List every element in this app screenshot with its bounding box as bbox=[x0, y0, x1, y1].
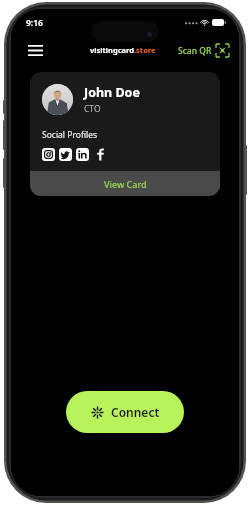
staticText: Social Profiles bbox=[42, 129, 98, 141]
button[interactable]: John Doe bbox=[30, 72, 220, 196]
button[interactable]: View Card bbox=[30, 171, 220, 196]
button[interactable]: Twitter bbox=[59, 148, 72, 161]
staticText: Scan QR bbox=[178, 45, 212, 57]
staticText: visitingcard bbox=[90, 45, 134, 55]
button[interactable]: LinkedIn bbox=[76, 148, 89, 161]
staticText: Connect bbox=[111, 404, 160, 420]
button[interactable]: Scan QR bbox=[178, 44, 229, 57]
button[interactable]: Menu bbox=[23, 38, 47, 62]
staticText: View Card bbox=[104, 178, 147, 190]
button[interactable]: Instagram bbox=[42, 148, 55, 161]
staticText: CTO bbox=[84, 103, 101, 115]
button[interactable]: visitingcard bbox=[90, 45, 156, 55]
button[interactable]: Facebook bbox=[94, 148, 107, 161]
staticText: .store bbox=[134, 45, 156, 55]
staticText: 9:16 bbox=[26, 17, 43, 29]
staticText: John Doe bbox=[84, 84, 140, 101]
button[interactable]: Connect bbox=[66, 391, 184, 433]
